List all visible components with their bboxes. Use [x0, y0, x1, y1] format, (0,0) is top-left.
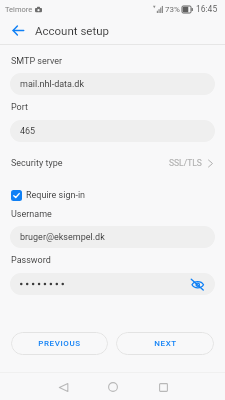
- button[interactable]: Back: [6, 19, 29, 42]
- button[interactable]: Home: [100, 374, 126, 400]
- button[interactable]: Show password: [188, 275, 206, 293]
- staticText: SSL/TLS: [169, 158, 202, 168]
- staticText: Password: [11, 255, 51, 266]
- button[interactable]: Show password: [10, 273, 215, 295]
- button[interactable]: Back: [50, 374, 76, 400]
- button[interactable]: Security type: [0, 154, 225, 172]
- button[interactable]: Recents: [150, 374, 176, 400]
- staticText: Port: [11, 102, 28, 113]
- button[interactable]: mail.nhl-data.dk: [10, 73, 215, 95]
- staticText: SMTP server: [11, 56, 63, 67]
- button[interactable]: bruger@eksempel.dk: [10, 226, 215, 248]
- staticText: Security type: [11, 158, 63, 169]
- staticText: bruger@eksempel.dk: [20, 232, 105, 243]
- staticText: Require sign-in: [26, 190, 86, 201]
- button[interactable]: NEXT: [116, 332, 214, 355]
- button[interactable]: PREVIOUS: [11, 332, 108, 355]
- staticText: 465: [20, 126, 36, 137]
- staticText: mail.nhl-data.dk: [20, 79, 84, 90]
- staticText: 73%: [165, 5, 180, 14]
- staticText: Username: [11, 209, 52, 220]
- button[interactable]: Require sign-in: [0, 188, 94, 202]
- staticText: PREVIOUS: [38, 339, 81, 348]
- staticText: Account setup: [35, 24, 109, 37]
- button[interactable]: 465: [10, 120, 215, 142]
- staticText: Telmore: [5, 5, 33, 14]
- staticText: NEXT: [154, 339, 177, 348]
- staticText: 16:45: [196, 4, 218, 14]
